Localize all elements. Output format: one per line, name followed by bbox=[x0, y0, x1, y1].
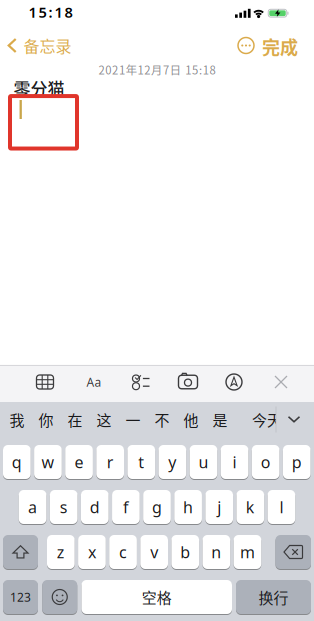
staticText: 完成 bbox=[262, 33, 298, 60]
staticText: n bbox=[211, 541, 221, 563]
button[interactable]: u bbox=[190, 445, 217, 479]
button[interactable]: 你 bbox=[38, 409, 53, 430]
staticText: l bbox=[279, 496, 283, 518]
staticText: u bbox=[198, 451, 208, 473]
button[interactable] bbox=[132, 374, 149, 389]
button[interactable]: 完成 bbox=[262, 33, 298, 60]
staticText: 15:18 bbox=[28, 2, 72, 22]
button[interactable] bbox=[42, 580, 77, 614]
staticText: t bbox=[138, 451, 144, 473]
button[interactable]: 这 bbox=[96, 409, 111, 430]
button[interactable] bbox=[3, 535, 38, 569]
button[interactable]: 空格 bbox=[81, 580, 232, 614]
staticText: 2021年12月7日 15:18 bbox=[98, 61, 215, 78]
staticText: 我 bbox=[9, 409, 24, 430]
button[interactable] bbox=[275, 535, 311, 569]
staticText: e bbox=[74, 451, 83, 473]
button[interactable]: j bbox=[205, 490, 233, 524]
staticText: y bbox=[168, 451, 176, 473]
staticText: 他 bbox=[183, 409, 198, 430]
button[interactable]: r bbox=[96, 445, 124, 479]
button[interactable]: 不 bbox=[154, 409, 169, 430]
staticText: 在 bbox=[67, 409, 82, 430]
button[interactable]: 123 bbox=[3, 580, 38, 614]
staticText: b bbox=[180, 541, 190, 563]
staticText: 零分猫 bbox=[13, 76, 64, 100]
button[interactable]: p bbox=[283, 445, 311, 479]
button[interactable] bbox=[226, 374, 242, 390]
button[interactable]: t bbox=[127, 445, 155, 479]
button[interactable] bbox=[178, 375, 197, 389]
staticText: s bbox=[60, 496, 68, 518]
button[interactable]: e bbox=[65, 445, 93, 479]
staticText: o bbox=[261, 451, 271, 473]
button[interactable]: b bbox=[171, 535, 199, 569]
button[interactable]: n bbox=[202, 535, 230, 569]
button[interactable] bbox=[288, 417, 299, 422]
staticText: c bbox=[119, 541, 127, 563]
button[interactable]: k bbox=[236, 490, 264, 524]
staticText: m bbox=[240, 541, 255, 563]
button[interactable]: a bbox=[19, 490, 46, 524]
staticText: f bbox=[123, 496, 129, 518]
staticText: 换行 bbox=[258, 586, 288, 608]
staticText: w bbox=[41, 451, 54, 473]
staticText: j bbox=[217, 496, 221, 518]
button[interactable]: l bbox=[268, 490, 295, 524]
button[interactable]: y bbox=[158, 445, 186, 479]
staticText: 空格 bbox=[142, 586, 172, 608]
staticText: r bbox=[107, 451, 114, 473]
staticText: 一 bbox=[125, 409, 140, 430]
button[interactable]: 换行 bbox=[236, 580, 311, 614]
button[interactable]: 他 bbox=[183, 409, 198, 430]
button[interactable]: i bbox=[221, 445, 248, 479]
button[interactable]: Aa bbox=[86, 374, 101, 390]
button[interactable]: m bbox=[234, 535, 261, 569]
staticText: 这 bbox=[96, 409, 111, 430]
staticText: 是 bbox=[212, 409, 227, 430]
button[interactable]: o bbox=[252, 445, 279, 479]
button[interactable]: q bbox=[3, 445, 31, 479]
staticText: a bbox=[28, 496, 37, 518]
button[interactable]: v bbox=[140, 535, 168, 569]
button[interactable]: 一 bbox=[125, 409, 140, 430]
button[interactable] bbox=[275, 376, 287, 388]
staticText: 今天 bbox=[252, 409, 282, 430]
staticText: 你 bbox=[38, 409, 53, 430]
button[interactable] bbox=[238, 37, 254, 53]
staticText: x bbox=[88, 541, 96, 563]
button[interactable]: w bbox=[34, 445, 62, 479]
button[interactable]: 今天 bbox=[252, 409, 282, 430]
button[interactable]: 备忘录 bbox=[7, 34, 71, 57]
button[interactable]: 在 bbox=[67, 409, 82, 430]
button[interactable]: c bbox=[109, 535, 137, 569]
staticText: 123 bbox=[10, 589, 31, 605]
staticText: v bbox=[150, 541, 158, 563]
button[interactable]: d bbox=[81, 490, 109, 524]
button[interactable] bbox=[36, 375, 53, 389]
button[interactable]: h bbox=[174, 490, 202, 524]
button[interactable]: 我 bbox=[9, 409, 24, 430]
staticText: 备忘录 bbox=[23, 34, 71, 57]
staticText: k bbox=[246, 496, 255, 518]
button[interactable]: s bbox=[50, 490, 78, 524]
staticText: 不 bbox=[154, 409, 169, 430]
staticText: i bbox=[233, 451, 237, 473]
staticText: Aa bbox=[86, 374, 101, 390]
button[interactable]: g bbox=[143, 490, 171, 524]
staticText: d bbox=[90, 496, 100, 518]
button[interactable]: 是 bbox=[212, 409, 227, 430]
staticText: p bbox=[292, 451, 302, 473]
button[interactable]: f bbox=[112, 490, 140, 524]
staticText: q bbox=[12, 451, 22, 473]
button[interactable]: z bbox=[47, 535, 75, 569]
staticText: h bbox=[183, 496, 193, 518]
staticText: z bbox=[57, 541, 65, 563]
button[interactable]: x bbox=[78, 535, 106, 569]
staticText: g bbox=[152, 496, 162, 518]
